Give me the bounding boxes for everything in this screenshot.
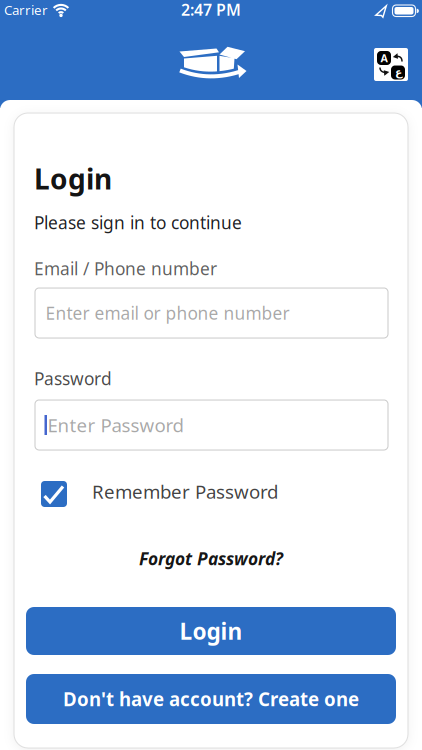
staticText: Login — [179, 616, 242, 646]
button[interactable]: Enter Password — [35, 400, 388, 450]
staticText: 2:47 PM — [181, 0, 241, 20]
button[interactable]: A — [374, 48, 408, 81]
staticText: Email / Phone number — [34, 257, 217, 280]
button[interactable]: Remember Password — [41, 481, 281, 509]
button[interactable]: Don't have account? Create one — [26, 674, 396, 724]
staticText: Enter email or phone number — [45, 301, 289, 324]
button[interactable]: Login — [26, 607, 396, 655]
staticText: Don't have account? Create one — [63, 687, 359, 711]
staticText: Forgot Password? — [139, 547, 283, 570]
button[interactable]: Forgot Password? — [0, 547, 422, 570]
staticText: Login — [34, 160, 112, 197]
staticText: Password — [34, 367, 112, 390]
staticText: A — [380, 51, 387, 65]
staticText: Remember Password — [92, 479, 278, 504]
staticText: Please sign in to continue — [34, 211, 242, 234]
staticText: Carrier — [4, 1, 48, 19]
button[interactable]: Enter email or phone number — [35, 288, 388, 338]
staticText: Enter Password — [47, 413, 183, 437]
staticText: ع — [394, 66, 401, 78]
